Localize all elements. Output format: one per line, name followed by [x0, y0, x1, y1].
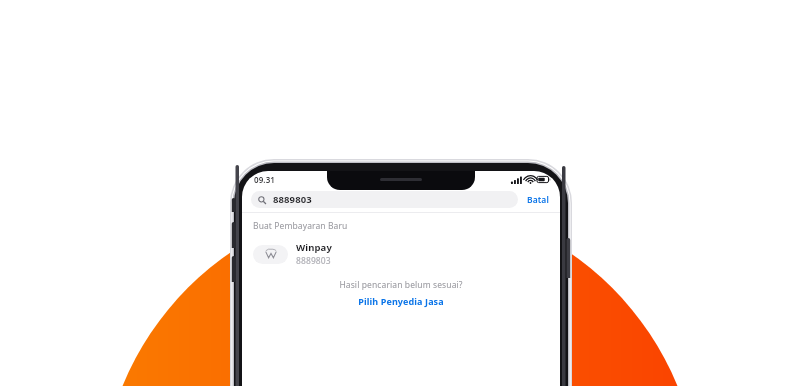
staticText: Hasil pencarian belum sesuai? [339, 279, 463, 291]
staticText: Batal [527, 194, 549, 206]
button[interactable]: Batal [525, 192, 551, 208]
staticText: Pilih Penyedia Jasa [358, 295, 444, 307]
staticText: Winpay [296, 241, 332, 254]
button[interactable]: Pilih Penyedia Jasa [354, 294, 448, 308]
staticText: 09.31 [254, 174, 276, 185]
staticText: 8889803 [273, 193, 312, 206]
staticText: 8889803 [296, 255, 331, 267]
staticText: Buat Pembayaran Baru [253, 220, 348, 232]
button[interactable]: Winpay [242, 240, 560, 268]
button[interactable]: 8889803 [251, 191, 518, 208]
